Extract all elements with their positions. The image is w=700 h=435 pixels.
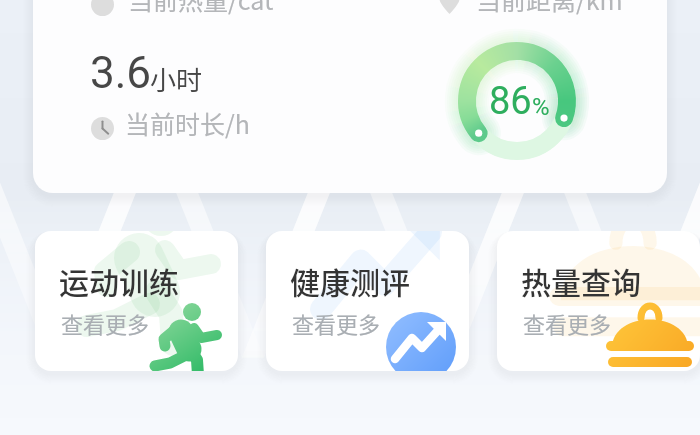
- staticText: 3.6: [90, 47, 152, 99]
- staticText: 查看更多: [292, 307, 381, 339]
- staticText: 运动训练: [59, 259, 179, 302]
- staticText: 小时: [150, 60, 203, 98]
- staticText: 查看更多: [523, 307, 612, 339]
- staticText: %: [532, 93, 550, 121]
- button[interactable]: 健康测评: [266, 231, 469, 371]
- staticText: 当前距离/km: [476, 0, 623, 17]
- staticText: 热量查询: [521, 259, 641, 302]
- button[interactable]: 热量查询: [497, 231, 700, 371]
- staticText: 健康测评: [290, 259, 410, 302]
- staticText: 查看更多: [61, 307, 150, 339]
- button[interactable]: 当前热量/cat: [33, 0, 667, 193]
- button[interactable]: 运动训练: [35, 231, 238, 371]
- staticText: 86: [489, 79, 532, 124]
- staticText: 当前时长/h: [125, 105, 250, 141]
- staticText: 当前热量/cat: [128, 0, 274, 17]
